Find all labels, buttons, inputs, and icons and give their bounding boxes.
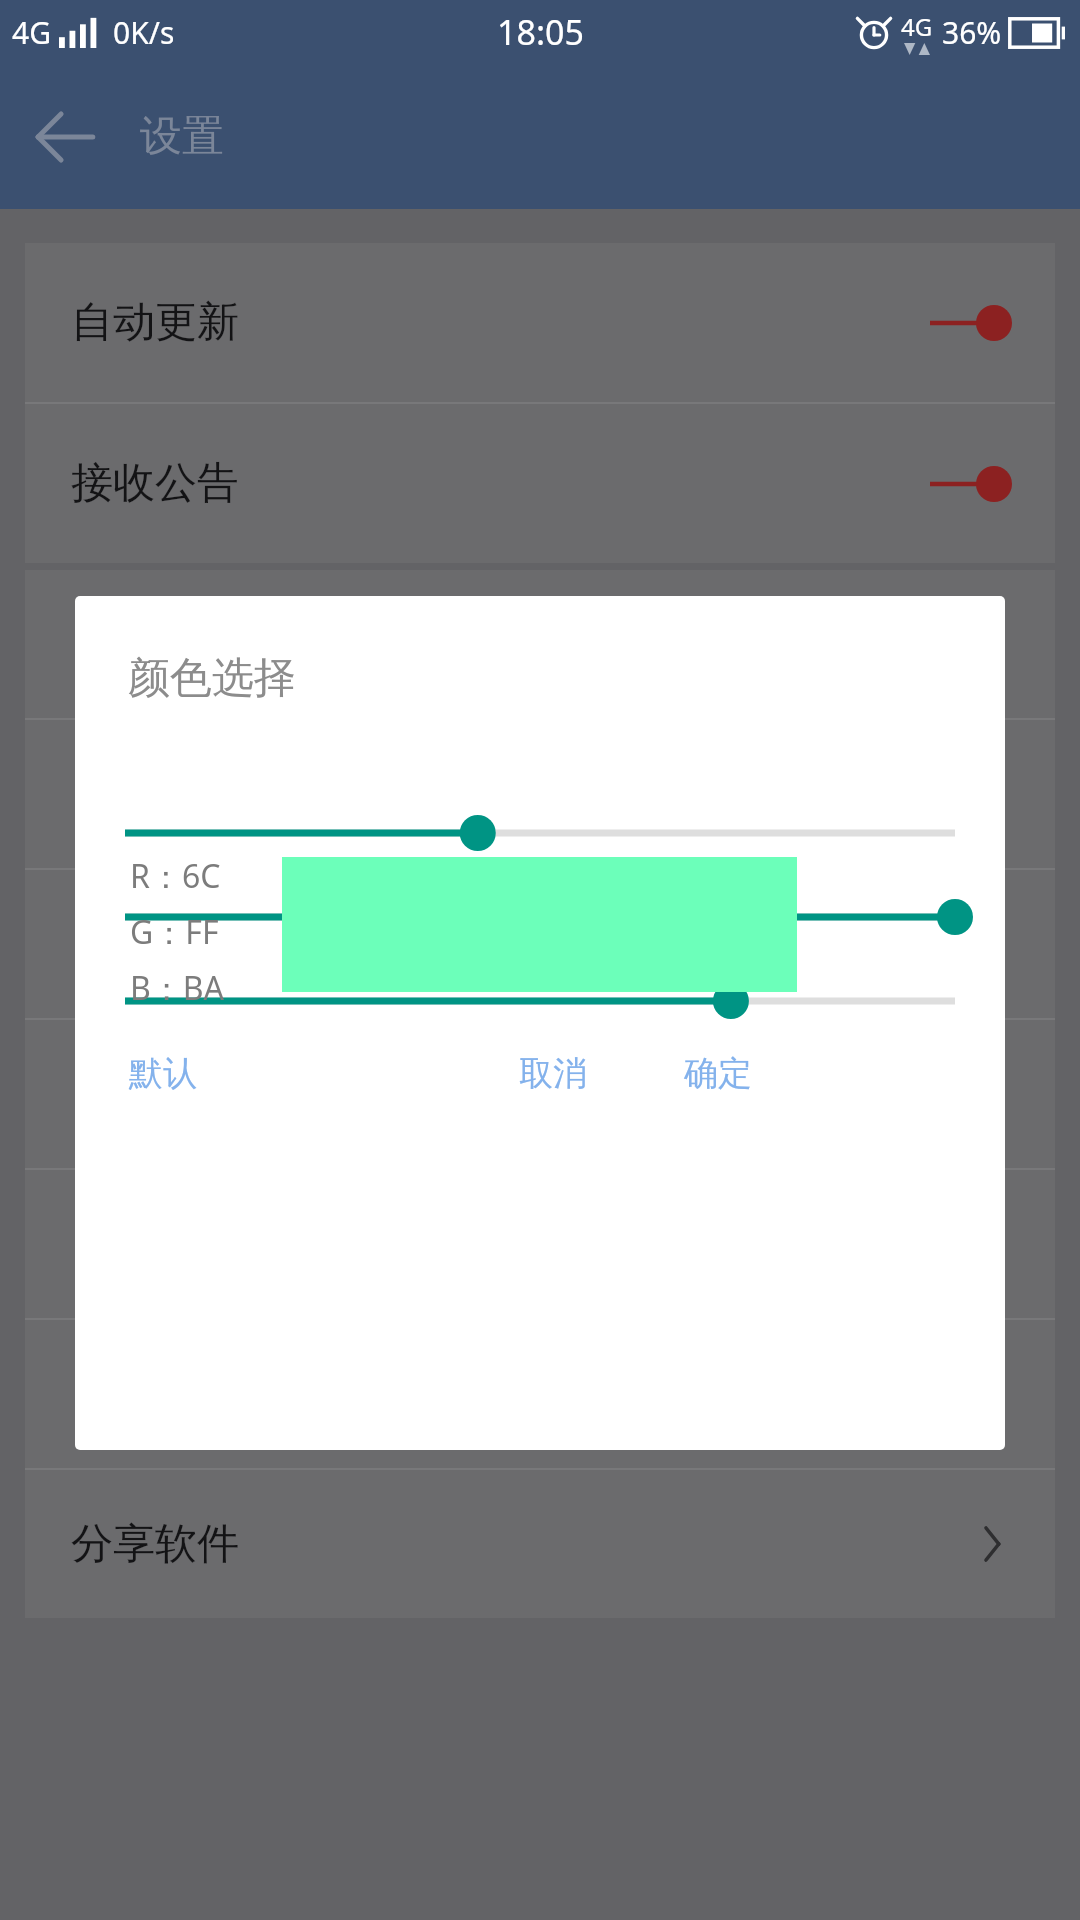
staticText: B：BA — [130, 966, 225, 1010]
staticText: 自动更新 — [71, 296, 239, 349]
button[interactable]: Green channel slider — [125, 896, 955, 938]
other: Toggle 接收公告 — [912, 462, 1012, 506]
button[interactable]: Red channel slider — [125, 812, 955, 854]
button[interactable] — [25, 570, 1055, 718]
button[interactable] — [25, 1320, 1055, 1468]
staticText: 4G — [901, 10, 933, 43]
staticText: 36% — [942, 12, 1002, 53]
other: Toggle 自动更新 — [912, 301, 1012, 345]
button[interactable]: Blue channel slider — [125, 980, 955, 1022]
staticText: 4G — [12, 12, 51, 53]
button[interactable] — [25, 1020, 1055, 1168]
button[interactable]: 自动更新 — [25, 243, 1055, 402]
staticText: R：6C — [130, 854, 221, 898]
staticText: 接收公告 — [71, 457, 239, 510]
button[interactable]: 取消 — [505, 1038, 601, 1109]
button[interactable]: 确定 — [670, 1038, 766, 1109]
staticText: 颜色选择 — [128, 652, 296, 705]
staticText: 18:05 — [497, 9, 584, 55]
staticText: 确定 — [684, 1052, 752, 1095]
staticText: 取消 — [519, 1052, 587, 1095]
button[interactable]: 接收公告 — [25, 404, 1055, 563]
staticText: G：FF — [130, 910, 219, 954]
button[interactable]: 分享软件 — [25, 1470, 1055, 1618]
staticText: 默认 — [129, 1052, 197, 1095]
button[interactable] — [25, 720, 1055, 868]
button[interactable] — [25, 1170, 1055, 1318]
staticText: 分享软件 — [71, 1518, 239, 1571]
staticText: 设置 — [140, 110, 224, 163]
button[interactable]: 默认 — [115, 1038, 211, 1109]
button: 颜色选择 — [75, 596, 1005, 1450]
button[interactable]: Back — [28, 101, 100, 173]
staticText: 0K/s — [113, 12, 175, 53]
button[interactable] — [25, 870, 1055, 1018]
